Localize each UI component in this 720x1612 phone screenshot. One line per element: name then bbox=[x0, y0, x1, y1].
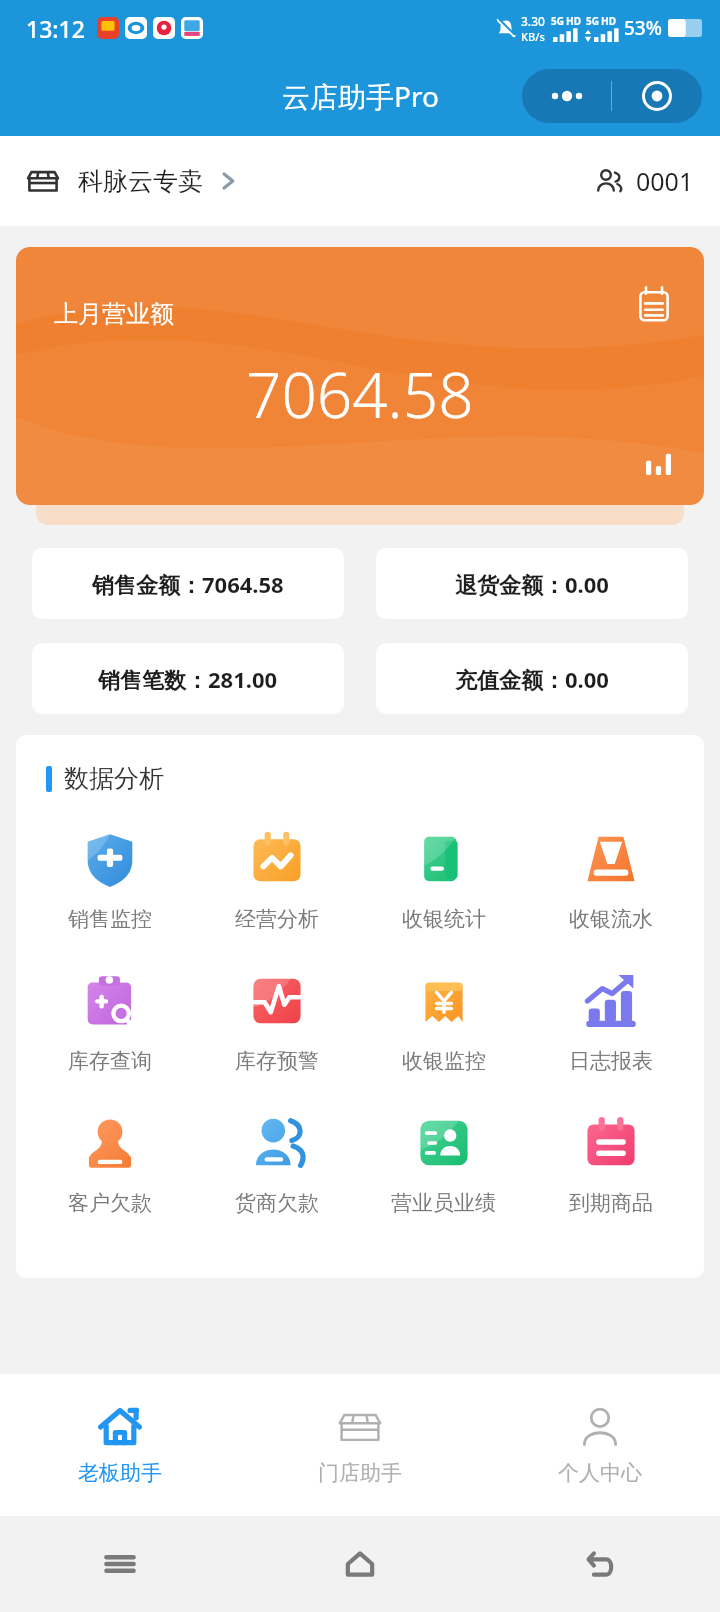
staticText: 营业员业绩 bbox=[391, 1190, 496, 1216]
staticText: 53% bbox=[624, 15, 662, 41]
staticText: 5G bbox=[551, 14, 564, 28]
button[interactable]: More options bbox=[522, 69, 611, 123]
button[interactable]: Recent apps bbox=[0, 1516, 240, 1612]
staticText: 云店助手Pro bbox=[282, 77, 439, 115]
button[interactable]: 经营分析 bbox=[193, 820, 360, 940]
button[interactable]: 库存预警 bbox=[193, 962, 360, 1082]
staticText: KB/s bbox=[521, 29, 545, 44]
button[interactable]: 营业员业绩 bbox=[360, 1104, 527, 1224]
staticText: 销售监控 bbox=[68, 906, 152, 932]
staticText: 经营分析 bbox=[235, 906, 319, 932]
button[interactable]: 0001 bbox=[594, 164, 694, 198]
staticText: 销售笔数：281.00 bbox=[98, 664, 278, 694]
button[interactable]: 门店助手 bbox=[240, 1374, 480, 1516]
staticText: 收银监控 bbox=[402, 1048, 486, 1074]
staticText: 销售金额：7064.58 bbox=[92, 569, 284, 599]
staticText: 5G bbox=[586, 14, 599, 28]
staticText: 门店助手 bbox=[318, 1460, 402, 1486]
button[interactable]: 销售金额：7064.58 bbox=[32, 548, 344, 619]
staticText: 充值金额：0.00 bbox=[455, 664, 609, 694]
button[interactable]: Home bbox=[240, 1516, 480, 1612]
button[interactable]: 收银监控 bbox=[360, 962, 527, 1082]
staticText: 收银统计 bbox=[402, 906, 486, 932]
button[interactable]: 退货金额：0.00 bbox=[376, 548, 688, 619]
button[interactable]: Close bbox=[612, 69, 702, 123]
staticText: 日志报表 bbox=[569, 1048, 653, 1074]
button[interactable]: 科脉云专卖 bbox=[26, 164, 239, 198]
staticText: 3.30 bbox=[521, 13, 545, 29]
staticText: 老板助手 bbox=[78, 1460, 162, 1486]
button[interactable]: 库存查询 bbox=[26, 962, 193, 1082]
button[interactable]: Back bbox=[480, 1516, 720, 1612]
button[interactable]: 销售笔数：281.00 bbox=[32, 643, 344, 714]
staticText: 0001 bbox=[636, 164, 694, 198]
button[interactable]: 收银统计 bbox=[360, 820, 527, 940]
staticText: 上月营业额 bbox=[54, 299, 174, 329]
staticText: 7064.58 bbox=[246, 352, 474, 436]
staticText: HD bbox=[566, 14, 581, 28]
button[interactable]: 收银流水 bbox=[527, 820, 694, 940]
staticText: 客户欠款 bbox=[68, 1190, 152, 1216]
button[interactable]: 上月营业额 bbox=[16, 247, 704, 505]
staticText: 退货金额：0.00 bbox=[455, 569, 609, 599]
button[interactable]: 销售监控 bbox=[26, 820, 193, 940]
button[interactable]: 货商欠款 bbox=[193, 1104, 360, 1224]
staticText: 到期商品 bbox=[569, 1190, 653, 1216]
staticText: 13:12 bbox=[26, 13, 85, 44]
staticText: 货商欠款 bbox=[235, 1190, 319, 1216]
button[interactable]: 到期商品 bbox=[527, 1104, 694, 1224]
staticText: HD bbox=[601, 14, 616, 28]
button[interactable]: 个人中心 bbox=[480, 1374, 720, 1516]
button[interactable]: Calendar bbox=[634, 285, 674, 325]
button[interactable]: 老板助手 bbox=[0, 1374, 240, 1516]
button[interactable]: 日志报表 bbox=[527, 962, 694, 1082]
staticText: 库存预警 bbox=[235, 1048, 319, 1074]
staticText: 收银流水 bbox=[569, 906, 653, 932]
staticText: 数据分析 bbox=[64, 763, 164, 794]
staticText: 库存查询 bbox=[68, 1048, 152, 1074]
staticText: 科脉云专卖 bbox=[78, 166, 203, 197]
button[interactable]: 客户欠款 bbox=[26, 1104, 193, 1224]
staticText: 个人中心 bbox=[558, 1460, 642, 1486]
button[interactable]: 充值金额：0.00 bbox=[376, 643, 688, 714]
